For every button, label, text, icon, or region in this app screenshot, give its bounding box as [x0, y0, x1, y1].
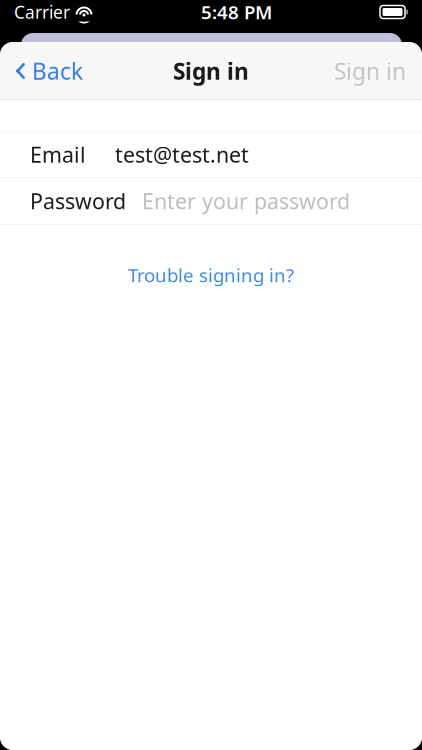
- button[interactable]: Back: [0, 49, 91, 93]
- staticText: test@test.net: [115, 140, 249, 169]
- button[interactable]: Sign in: [326, 49, 422, 93]
- staticText: Carrier: [14, 0, 70, 23]
- staticText: Sign in: [173, 56, 249, 86]
- staticText: Trouble signing in?: [128, 262, 294, 287]
- staticText: Email: [30, 140, 86, 169]
- button[interactable]: Password: [0, 178, 422, 224]
- staticText: Sign in: [334, 56, 406, 86]
- staticText: Password: [30, 187, 126, 215]
- staticText: 5:48 PM: [201, 0, 272, 24]
- button[interactable]: Email: [0, 131, 422, 177]
- staticText: Back: [32, 56, 83, 86]
- staticText: Enter your password: [142, 187, 350, 215]
- button[interactable]: Trouble signing in?: [116, 258, 306, 291]
